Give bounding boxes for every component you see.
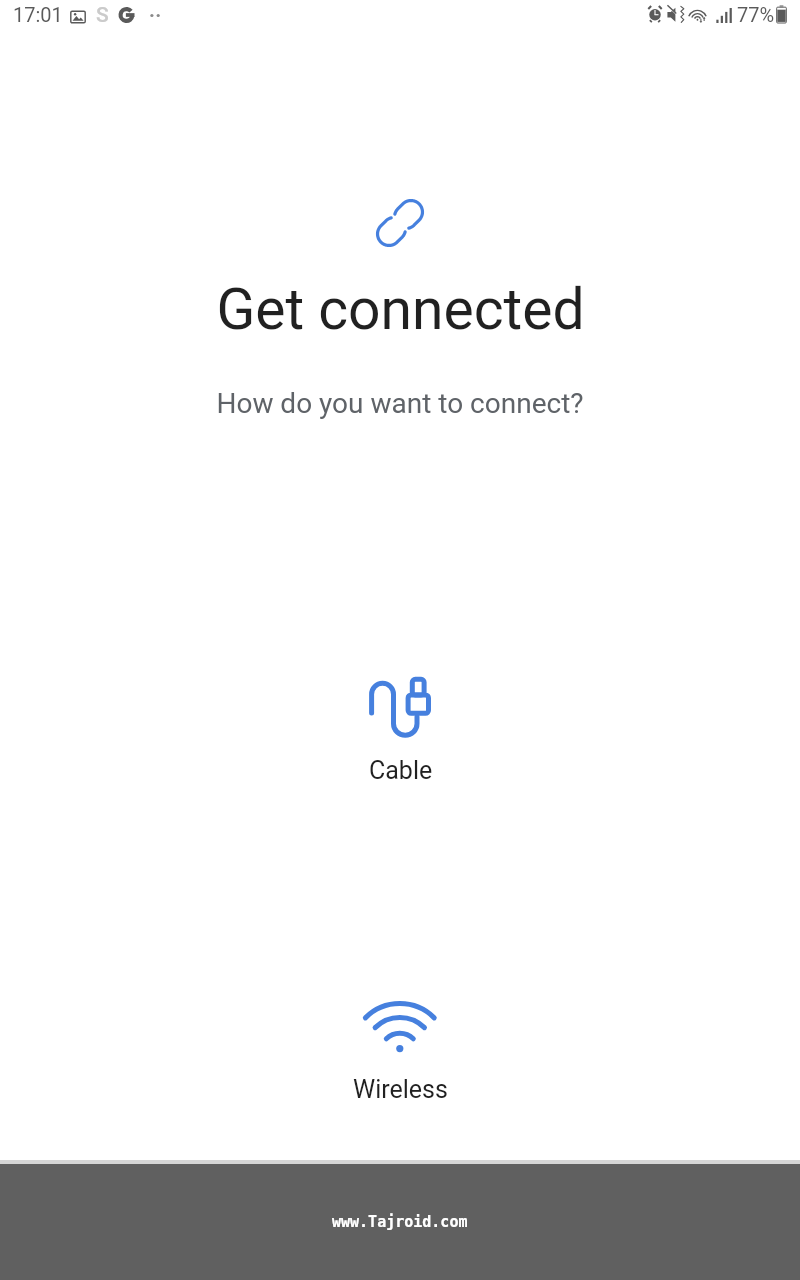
button[interactable]: Wireless	[200, 941, 600, 1161]
staticText: www.Tajroid.com	[332, 1213, 468, 1230]
staticText: 17:01	[13, 3, 63, 26]
staticText: How do you want to connect?	[216, 387, 584, 420]
staticText: S	[96, 3, 109, 28]
staticText: Cable	[369, 756, 433, 785]
staticText: Get connected	[216, 276, 585, 343]
staticText: 77%	[737, 3, 775, 26]
staticText: Wireless	[353, 1075, 448, 1104]
button[interactable]: Cable	[201, 617, 601, 837]
